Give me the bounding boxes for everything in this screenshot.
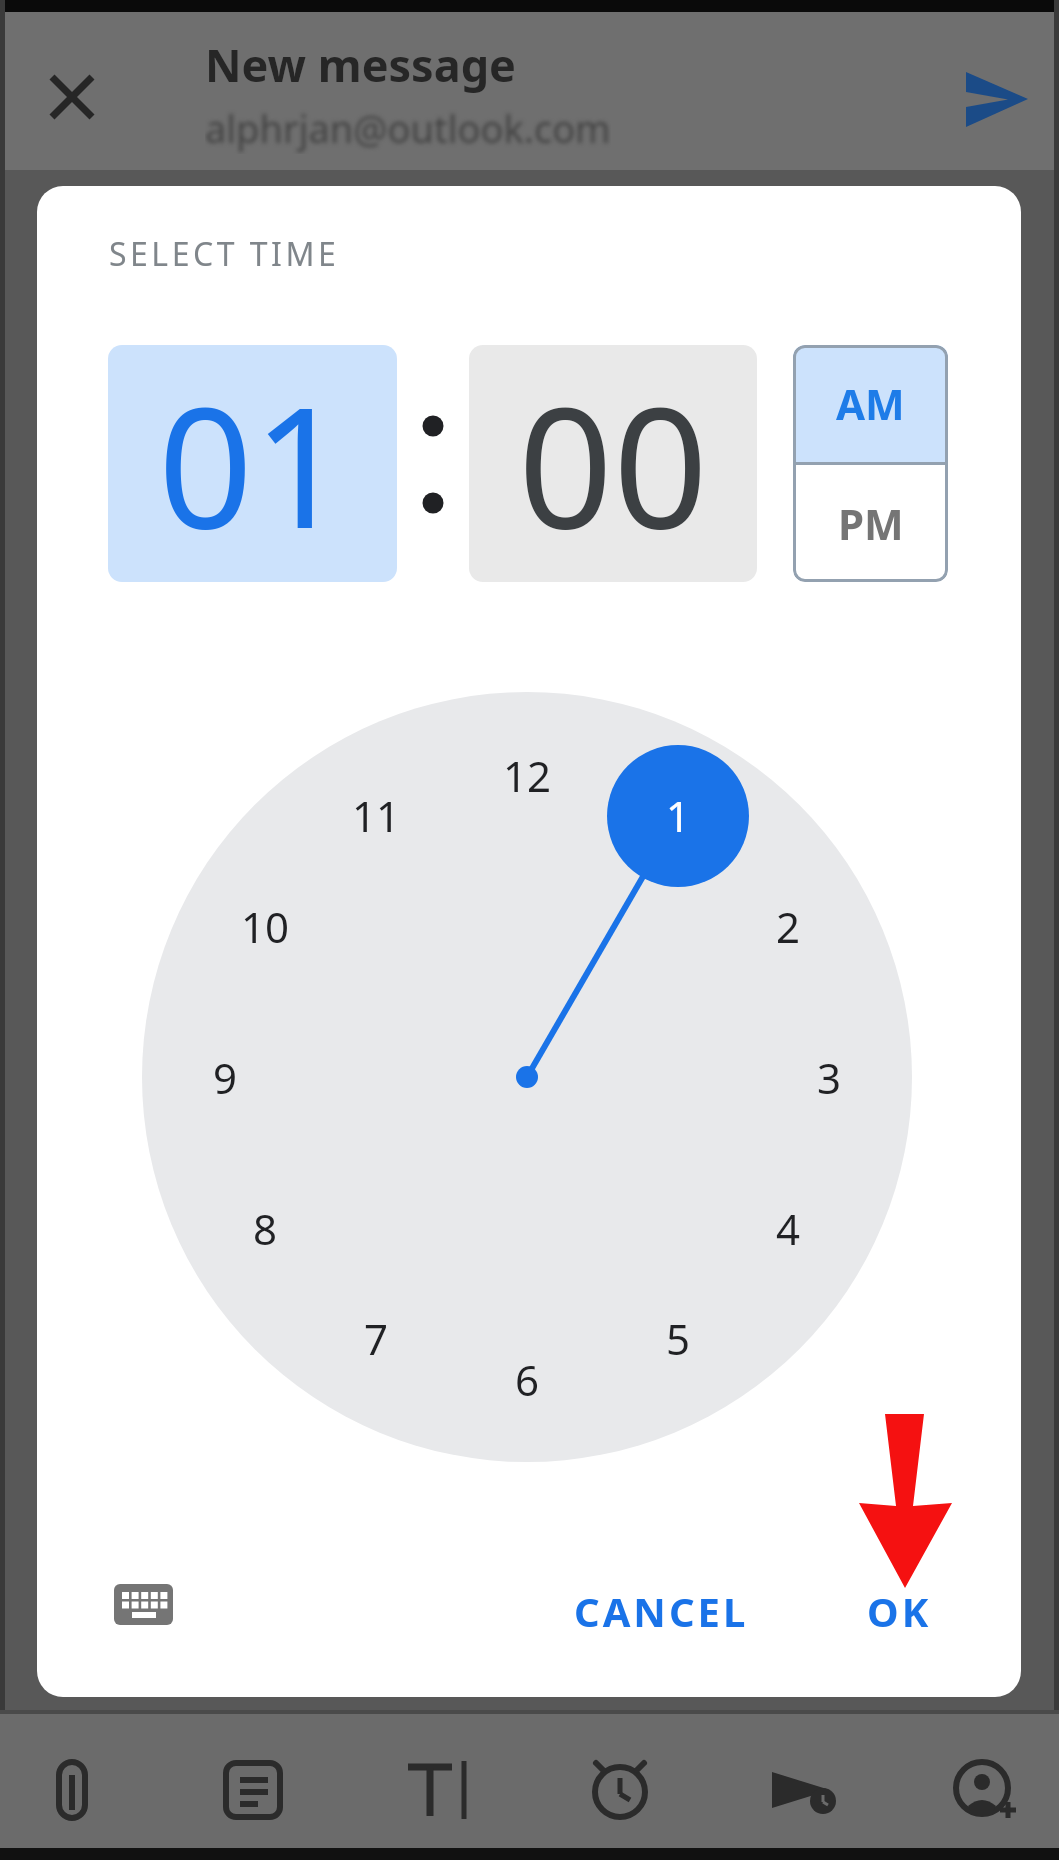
- staticText: 4: [776, 1200, 801, 1257]
- staticText: 6: [515, 1351, 540, 1408]
- staticText: 8: [253, 1200, 278, 1257]
- staticText: OK: [867, 1584, 932, 1638]
- staticText: 2: [776, 898, 801, 955]
- button[interactable]: PM: [793, 465, 948, 582]
- staticText: 12: [503, 747, 552, 804]
- staticText: 3: [817, 1049, 842, 1106]
- staticText: 7: [364, 1310, 389, 1367]
- staticText: 1: [666, 787, 691, 844]
- button[interactable]: AM: [793, 345, 948, 462]
- staticText: 11: [352, 787, 401, 844]
- staticText: 10: [241, 898, 290, 955]
- button[interactable]: 00: [469, 345, 757, 582]
- staticText: CANCEL: [574, 1584, 749, 1638]
- staticText: New message: [205, 34, 516, 95]
- staticText: 00: [518, 351, 708, 577]
- staticText: 9: [213, 1049, 238, 1106]
- staticText: alphrjan@outlook.com: [205, 102, 611, 154]
- button[interactable]: CANCEL: [551, 1581, 771, 1641]
- staticText: PM: [838, 495, 904, 552]
- staticText: 5: [666, 1310, 691, 1367]
- staticText: 01: [158, 351, 348, 577]
- button[interactable]: [94, 1564, 194, 1644]
- staticText: AM: [836, 375, 905, 432]
- button[interactable]: 01: [108, 345, 397, 582]
- button[interactable]: OK: [837, 1581, 962, 1641]
- staticText: SELECT TIME: [109, 232, 340, 276]
